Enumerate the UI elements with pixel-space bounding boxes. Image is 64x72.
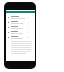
button[interactable]: More: [6, 25, 35, 30]
button[interactable]: [11, 41, 32, 55]
button[interactable]: More: [6, 15, 35, 20]
button[interactable]: More: [6, 20, 35, 25]
button[interactable]: More: [6, 35, 35, 40]
button[interactable]: More: [6, 30, 35, 35]
